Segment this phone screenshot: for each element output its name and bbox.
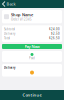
- staticText: Shop Name: [11, 12, 33, 17]
- staticText: Delivery: [4, 32, 15, 35]
- button[interactable]: Pay Now: [2, 44, 62, 49]
- staticText: Continue: [22, 92, 41, 98]
- staticText: Total: [4, 36, 10, 40]
- button[interactable]: Continue: [0, 90, 64, 100]
- staticText: $2.50: [51, 32, 60, 35]
- staticText: Pay Now: [24, 44, 39, 49]
- staticText: $26.50: [49, 36, 60, 40]
- staticText: Back: [6, 1, 15, 7]
- staticText: $24.00: [49, 27, 60, 31]
- staticText: Delivery: [4, 66, 15, 69]
- staticText: Subtotal: [4, 27, 15, 31]
- staticText: Paid: [29, 56, 35, 60]
- staticText: Order #12345: [11, 18, 32, 21]
- button[interactable]: Back: [0, 1, 15, 7]
